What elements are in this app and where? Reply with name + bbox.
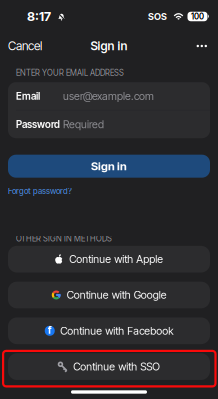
staticText: Required xyxy=(63,118,104,131)
staticText: Email xyxy=(16,90,40,102)
staticText: Continue with Apple xyxy=(69,253,163,266)
button[interactable]: Continue with Apple xyxy=(8,246,210,272)
staticText: Sign in xyxy=(91,159,127,173)
button[interactable]: Forgot password? xyxy=(8,186,72,196)
staticText: 100 xyxy=(191,12,204,21)
staticText: Sign in xyxy=(90,39,127,53)
button[interactable]: Cancel xyxy=(8,39,42,53)
staticText: Continue with SSO xyxy=(73,360,160,373)
staticText: f xyxy=(48,324,52,336)
staticText: Cancel xyxy=(8,39,42,53)
button[interactable]: Continue with SSO xyxy=(8,353,210,380)
staticText: user@example.com xyxy=(63,90,154,102)
button[interactable]: More xyxy=(197,45,207,47)
staticText: Password xyxy=(16,118,60,130)
button[interactable]: f xyxy=(8,317,210,344)
staticText: ENTER YOUR EMAIL ADDRESS xyxy=(16,68,124,78)
staticText: OTHER SIGN IN METHODS xyxy=(16,234,112,244)
staticText: Continue with Facebook xyxy=(60,324,173,337)
button[interactable]: Password xyxy=(8,110,210,138)
button[interactable]: Continue with Google xyxy=(8,282,210,308)
staticText: Continue with Google xyxy=(67,288,167,301)
staticText: 8:17 xyxy=(27,9,51,24)
button[interactable]: Sign in xyxy=(8,155,210,178)
button[interactable]: Email xyxy=(8,82,210,110)
staticText: SOS xyxy=(148,11,167,22)
staticText: Forgot password? xyxy=(8,186,72,196)
